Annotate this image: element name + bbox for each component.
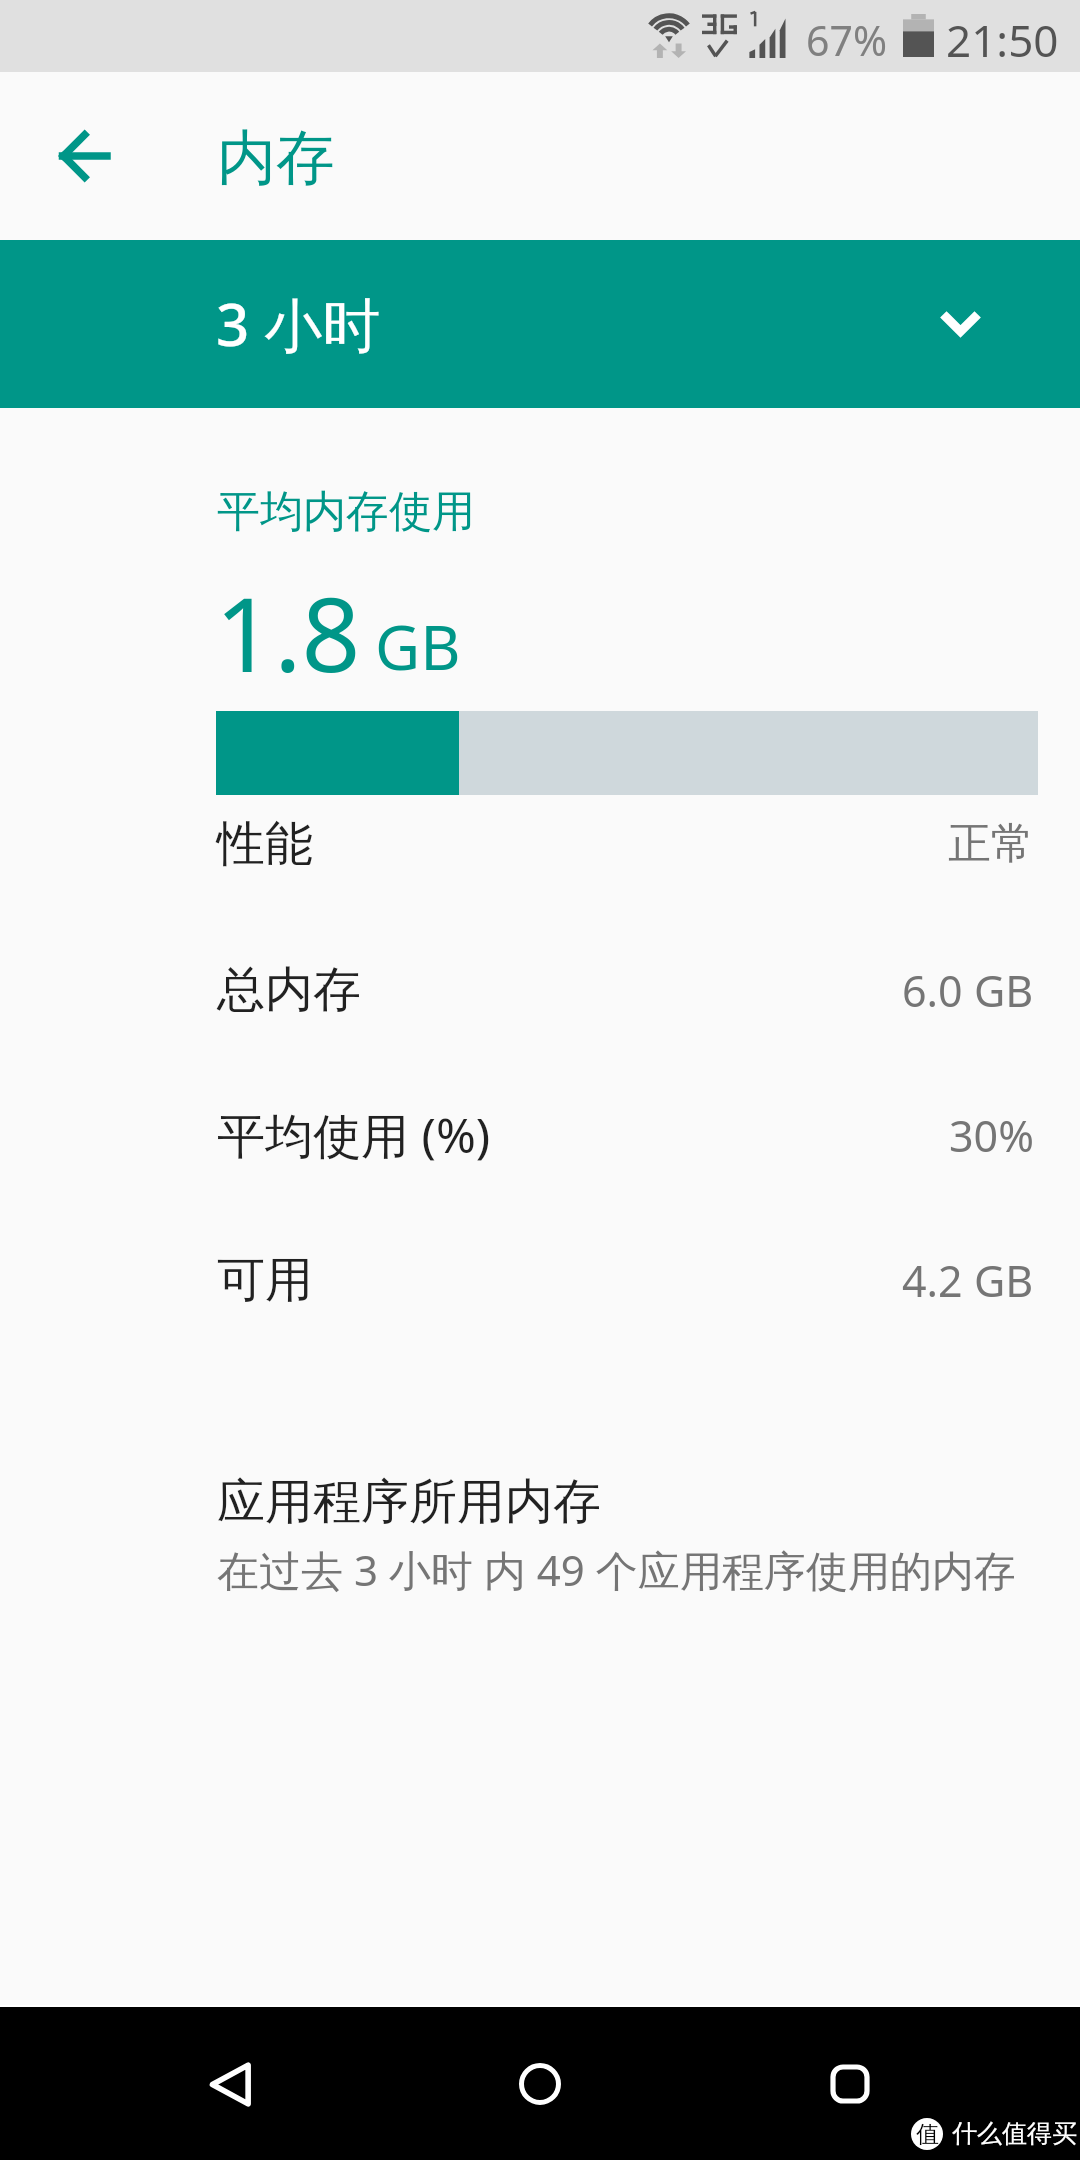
staticText: 30% <box>949 1106 1034 1165</box>
button[interactable]: 性能 <box>0 771 1080 917</box>
staticText: 在过去 3 小时 内 49 个应用程序使用的内存 <box>217 1541 1016 1598</box>
staticText: 性能 <box>217 814 313 874</box>
button[interactable]: 总内存 <box>0 917 1080 1063</box>
button[interactable]: Recent apps <box>790 2024 910 2144</box>
button[interactable]: 3 小时 <box>0 240 1080 408</box>
staticText: 3 小时 <box>216 284 381 363</box>
button[interactable]: Back <box>36 108 132 204</box>
staticText: 值 <box>916 2120 939 2149</box>
staticText: 内存 <box>217 121 335 195</box>
other: Expand time range <box>918 282 1002 366</box>
staticText: 平均使用 (%) <box>217 1102 491 1168</box>
staticText: 总内存 <box>217 960 361 1020</box>
staticText: 4.2 GB <box>902 1251 1034 1310</box>
button[interactable]: 平均使用 (%) <box>0 1062 1080 1208</box>
staticText: 应用程序所用内存 <box>217 1472 601 1532</box>
staticText: 正常 <box>948 817 1034 871</box>
button[interactable]: 可用 <box>0 1207 1080 1353</box>
staticText: 什么值得买 <box>952 2118 1077 2149</box>
staticText: 1.8 <box>215 562 361 702</box>
staticText: GB <box>375 604 461 688</box>
button[interactable]: Back <box>170 2024 290 2144</box>
staticText: 可用 <box>217 1250 313 1310</box>
staticText: 6.0 GB <box>902 961 1034 1020</box>
button[interactable]: Home <box>480 2024 600 2144</box>
staticText: 67% <box>806 12 887 68</box>
staticText: 平均内存使用 <box>217 485 475 539</box>
staticText: 21:50 <box>946 10 1059 70</box>
